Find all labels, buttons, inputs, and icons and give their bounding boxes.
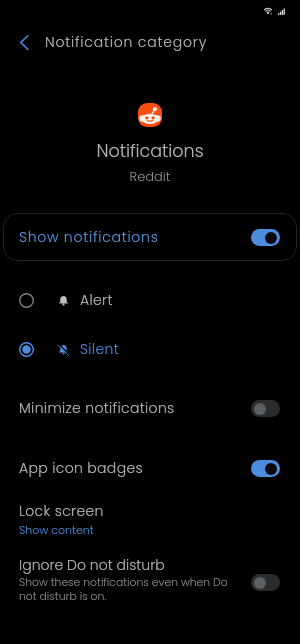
staticText: Show notifications [19, 227, 159, 247]
button[interactable]: Ignore Do not disturb [0, 551, 300, 613]
staticText: Show these notifications even when Do no… [19, 575, 235, 603]
staticText: App icon badges [19, 458, 251, 478]
button[interactable]: Show notifications [3, 213, 297, 261]
staticText: Show content [19, 522, 94, 537]
button[interactable]: Alert [0, 277, 300, 323]
button[interactable]: Back [7, 25, 41, 59]
staticText: Notifications [0, 139, 300, 164]
button[interactable]: App icon badges [0, 444, 300, 492]
button[interactable]: Minimize notifications [0, 384, 300, 432]
staticText: Alert [80, 290, 113, 310]
staticText: Ignore Do not disturb [19, 555, 165, 575]
button[interactable]: Silent [0, 326, 300, 372]
staticText: Minimize notifications [19, 398, 251, 418]
button[interactable]: Lock screen [0, 495, 300, 545]
staticText: Lock screen [19, 501, 104, 521]
staticText: Reddit [0, 167, 300, 185]
staticText: Silent [80, 339, 119, 359]
staticText: Notification category [45, 32, 208, 52]
